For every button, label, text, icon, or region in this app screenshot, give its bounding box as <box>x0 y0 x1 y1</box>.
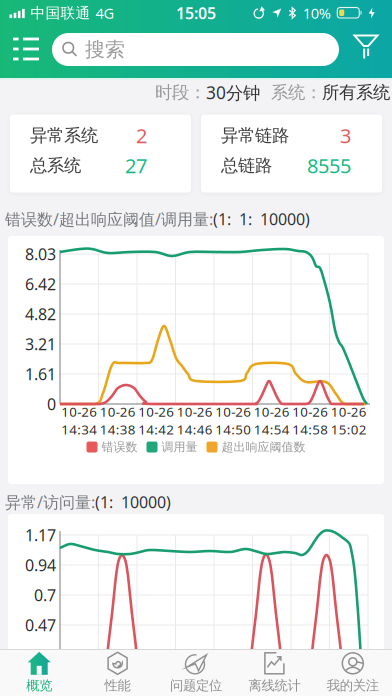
button[interactable]: 概览 <box>0 649 78 695</box>
staticText: 10-26 <box>292 403 328 420</box>
staticText: 我的关注 <box>327 677 379 694</box>
staticText: 总链路 <box>221 155 272 176</box>
staticText: 1.61 <box>25 363 56 385</box>
staticText: 时段： <box>155 82 206 103</box>
button[interactable]: 我的关注 <box>314 649 392 695</box>
staticText: 14:46 <box>177 420 213 438</box>
staticText: 所有系统 <box>322 82 390 103</box>
staticText: 0.7 <box>34 584 56 606</box>
button[interactable]: 异常系统 <box>10 114 191 192</box>
button[interactable]: 性能 <box>78 649 157 695</box>
staticText: 10-26 <box>215 403 251 420</box>
staticText: 10% <box>303 3 331 23</box>
staticText: 错误数/超出响应阈值/调用量: <box>5 208 213 230</box>
staticText: 10-26 <box>138 403 174 420</box>
staticText: 0 <box>47 393 56 415</box>
staticText: 问题定位 <box>170 677 222 694</box>
staticText: 异常/访问量: <box>5 491 95 513</box>
staticText: 3.21 <box>25 333 56 355</box>
button[interactable]: 异常链路 <box>201 114 382 192</box>
staticText: 14:42 <box>138 420 174 438</box>
button[interactable]: 离线统计 <box>235 649 314 695</box>
staticText: 超出响应阈值数 <box>221 440 305 454</box>
staticText: (1: 1: 10000) <box>213 208 310 230</box>
staticText: 8.03 <box>25 243 56 265</box>
staticText: 异常系统 <box>30 125 98 146</box>
staticText: 3 <box>340 122 351 149</box>
staticText: 离线统计 <box>248 677 300 694</box>
staticText: 异常链路 <box>221 125 289 146</box>
staticText: 错误数 <box>101 440 137 454</box>
staticText: 总系统 <box>30 155 81 176</box>
staticText: 2 <box>136 122 147 149</box>
staticText: 14:50 <box>215 420 251 438</box>
button[interactable]: 问题定位 <box>157 649 235 695</box>
staticText: 系统： <box>271 82 322 103</box>
staticText: 14:58 <box>292 420 328 438</box>
staticText: 1.17 <box>25 524 56 546</box>
staticText: 14:54 <box>254 420 290 438</box>
staticText: 4G <box>95 3 114 23</box>
staticText: 27 <box>125 152 147 179</box>
staticText: 中国联通 <box>30 4 90 22</box>
button[interactable]: 筛选 <box>348 29 384 65</box>
staticText: 0.47 <box>25 614 56 636</box>
staticText: 10-26 <box>177 403 213 420</box>
staticText: 6.42 <box>25 273 56 295</box>
button[interactable]: 菜单 <box>6 29 46 69</box>
staticText: 15:02 <box>331 420 367 438</box>
staticText: 概览 <box>26 677 52 694</box>
staticText: 14:38 <box>100 420 136 438</box>
staticText: 14:34 <box>61 420 97 438</box>
staticText: 搜索 <box>85 37 125 62</box>
staticText: 10-26 <box>331 403 367 420</box>
staticText: 4.82 <box>25 303 56 325</box>
button[interactable]: 系统： <box>271 78 390 107</box>
staticText: (1: 10000) <box>95 491 171 513</box>
staticText: 15:05 <box>176 2 216 24</box>
staticText: 10-26 <box>61 403 97 420</box>
button[interactable]: 时段： <box>155 78 260 107</box>
staticText: 调用量 <box>161 440 197 454</box>
staticText: 10-26 <box>100 403 136 420</box>
staticText: 10-26 <box>254 403 290 420</box>
staticText: 0.94 <box>25 554 56 576</box>
staticText: 8555 <box>307 152 351 179</box>
button[interactable]: 搜索 <box>52 33 339 66</box>
staticText: 性能 <box>105 677 131 694</box>
staticText: 30分钟 <box>206 81 260 104</box>
